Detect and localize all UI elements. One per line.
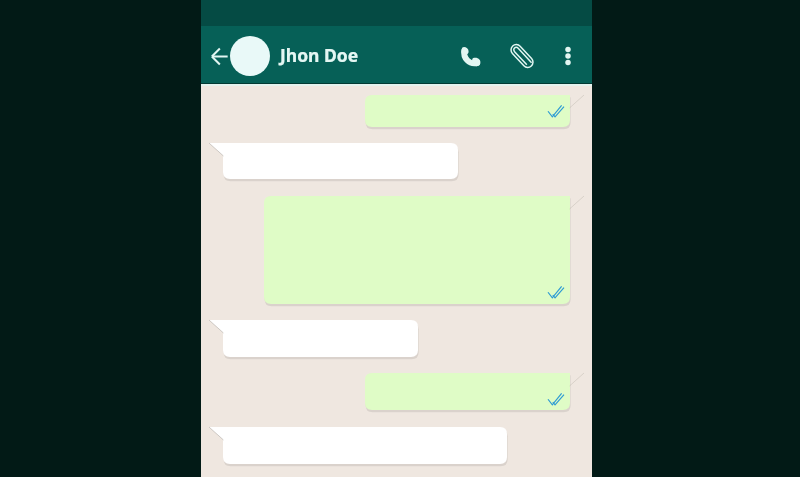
- button[interactable]: Back: [203, 40, 235, 72]
- button[interactable]: More options: [550, 38, 586, 74]
- button[interactable]: Attach: [502, 36, 542, 76]
- button[interactable]: Voice call: [451, 36, 491, 76]
- staticText: Jhon Doe: [280, 43, 359, 67]
- button[interactable]: Jhon Doe: [280, 26, 359, 83]
- button[interactable]: Contact photo: [230, 36, 270, 76]
